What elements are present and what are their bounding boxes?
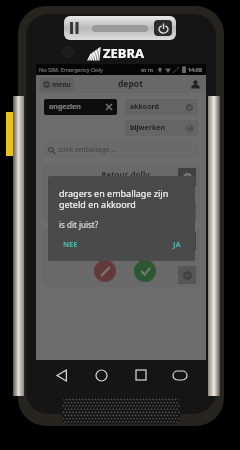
button[interactable]: Back <box>49 362 75 388</box>
button[interactable]: JA <box>169 237 185 251</box>
staticText: 0 <box>185 253 190 263</box>
button[interactable]: NEE <box>59 237 82 251</box>
staticText: akkoord <box>130 102 186 112</box>
button[interactable]: Retour pallet DPB <box>42 229 200 287</box>
staticText: m m <box>141 66 154 73</box>
button[interactable]: Plus <box>178 168 196 186</box>
staticText: ZEBRA <box>103 44 144 62</box>
button[interactable]: Plus <box>178 232 196 250</box>
staticText: is dit juist? <box>59 219 99 230</box>
button[interactable]: Afkeuren <box>94 196 116 218</box>
staticText: No SIM, Emergency Only <box>39 66 103 73</box>
staticText: 14:08 <box>188 66 203 73</box>
staticText: JA <box>173 239 181 249</box>
staticText: Retour dolly <box>101 169 150 180</box>
button[interactable]: zoek emballage... <box>44 143 198 157</box>
staticText: zoek emballage... <box>58 145 116 155</box>
button[interactable]: Home <box>88 362 114 388</box>
button[interactable]: Recents <box>128 362 154 388</box>
button[interactable]: Akkoord <box>134 196 156 218</box>
staticText: depot <box>118 78 143 90</box>
button[interactable]: ongezien <box>44 99 117 115</box>
staticText: ongezien <box>49 102 106 112</box>
staticText: dragers en emballage zijn geteld en akko… <box>59 187 185 210</box>
button[interactable]: Retour dolly <box>42 165 200 223</box>
button[interactable]: bijwerken <box>125 120 198 136</box>
button[interactable]: Min <box>178 266 196 284</box>
staticText: in auto: 11 <box>104 180 146 191</box>
staticText: NEE <box>63 239 78 249</box>
button[interactable]: akkoord <box>125 99 198 115</box>
button[interactable]: Account <box>188 77 202 91</box>
button[interactable]: Power <box>154 20 172 36</box>
staticText: menu <box>52 80 71 89</box>
button[interactable]: Keyboard <box>167 362 193 388</box>
button[interactable]: menu <box>40 78 74 91</box>
staticText: bijwerken <box>130 123 186 133</box>
button[interactable]: Afkeuren <box>94 260 116 282</box>
button[interactable]: Akkoord <box>134 260 156 282</box>
